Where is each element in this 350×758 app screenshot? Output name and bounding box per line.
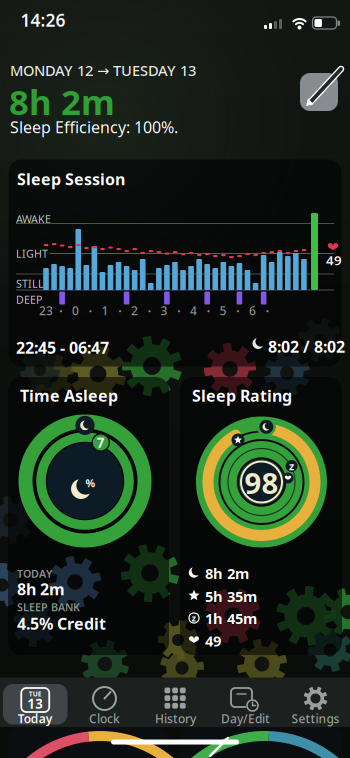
staticText: · xyxy=(266,302,269,318)
staticText: DEEP xyxy=(16,292,42,307)
staticText: 1h 45m xyxy=(205,608,257,628)
staticText: 14:26 xyxy=(20,8,65,31)
staticText: 8:02 / 8:02 xyxy=(268,336,345,357)
staticText: z xyxy=(191,612,196,624)
staticText: · xyxy=(118,302,121,318)
staticText: · xyxy=(89,302,92,318)
staticText: STILL xyxy=(16,276,44,291)
staticText: Today xyxy=(18,710,53,726)
staticText: · xyxy=(59,302,62,318)
staticText: Time Asleep xyxy=(20,385,118,406)
staticText: Day/Edit xyxy=(221,710,270,726)
staticText: TODAY xyxy=(17,566,52,581)
staticText: 8h 2m xyxy=(17,578,65,600)
button[interactable]: TUE xyxy=(1,683,69,725)
staticText: 0 xyxy=(72,302,79,318)
staticText: 13 xyxy=(27,695,43,712)
staticText: 49 xyxy=(205,631,221,650)
staticText: 3 xyxy=(160,302,167,318)
staticText: 5h 35m xyxy=(205,586,257,606)
staticText: Clock xyxy=(89,710,120,726)
staticText: 22:45 - 06:47 xyxy=(16,337,109,358)
staticText: Settings xyxy=(291,710,339,726)
staticText: TUE xyxy=(29,690,42,698)
staticText: 5 xyxy=(219,302,226,318)
staticText: z xyxy=(289,459,294,473)
staticText: 6 xyxy=(249,302,256,318)
staticText: History xyxy=(155,710,196,726)
staticText: · xyxy=(177,302,180,318)
staticText: MONDAY 12 → TUESDAY 13 xyxy=(10,60,196,80)
staticText: 98 xyxy=(244,463,278,502)
staticText: Sleep Session xyxy=(17,168,125,190)
staticText: 4.5% Credit xyxy=(17,613,106,634)
staticText: AWAKE xyxy=(16,212,51,226)
staticText: SLEEP BANK xyxy=(17,600,80,614)
staticText: 7 xyxy=(97,434,105,451)
staticText: 2 xyxy=(131,302,138,318)
staticText: 4 xyxy=(190,302,197,318)
staticText: Sleep Rating xyxy=(192,385,292,406)
button[interactable] xyxy=(296,57,346,117)
staticText: · xyxy=(236,302,239,318)
button[interactable]: Settings xyxy=(282,683,348,725)
staticText: · xyxy=(148,302,151,318)
button[interactable]: Clock xyxy=(71,683,137,725)
staticText: 23 xyxy=(39,302,53,318)
button[interactable]: Day/Edit xyxy=(211,683,279,725)
staticText: % xyxy=(85,476,95,490)
staticText: 1 xyxy=(101,302,108,318)
staticText: 8h 2m xyxy=(9,78,115,124)
staticText: 8h 2m xyxy=(205,563,249,583)
staticText: · xyxy=(207,302,210,318)
button[interactable]: History xyxy=(142,683,208,725)
staticText: 49 xyxy=(326,251,342,269)
staticText: LIGHT xyxy=(16,246,48,261)
staticText: Sleep Efficiency: 100%. xyxy=(10,116,178,138)
